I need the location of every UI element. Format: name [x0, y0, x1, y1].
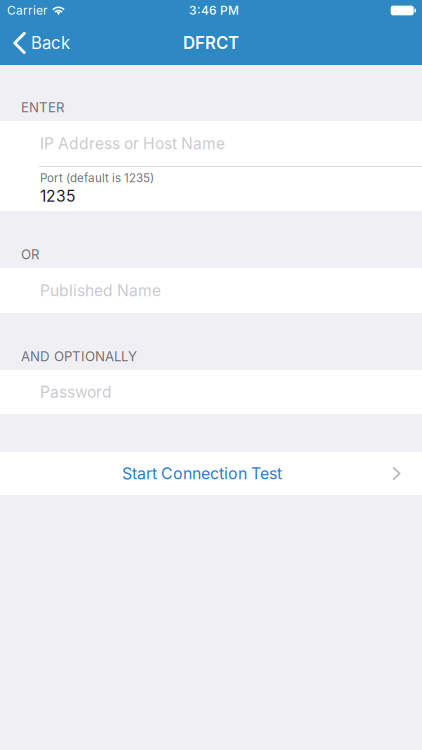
staticText: AND OPTIONALLY: [21, 348, 137, 364]
staticText: Back: [31, 33, 70, 53]
staticText: DFRCT: [183, 33, 239, 53]
button[interactable]: Start Connection Test: [0, 452, 422, 495]
staticText: 3:46 PM: [189, 3, 239, 18]
staticText: Start Connection Test: [122, 464, 282, 483]
staticText: Password: [40, 383, 112, 401]
staticText: IP Address or Host Name: [40, 134, 225, 153]
staticText: Carrier: [7, 3, 48, 18]
staticText: ENTER: [21, 99, 64, 115]
staticText: Published Name: [40, 281, 161, 300]
button[interactable]: Back: [0, 21, 80, 65]
staticText: OR: [21, 246, 39, 262]
staticText: 1235: [40, 187, 75, 205]
staticText: Port (default is 1235): [40, 171, 154, 185]
